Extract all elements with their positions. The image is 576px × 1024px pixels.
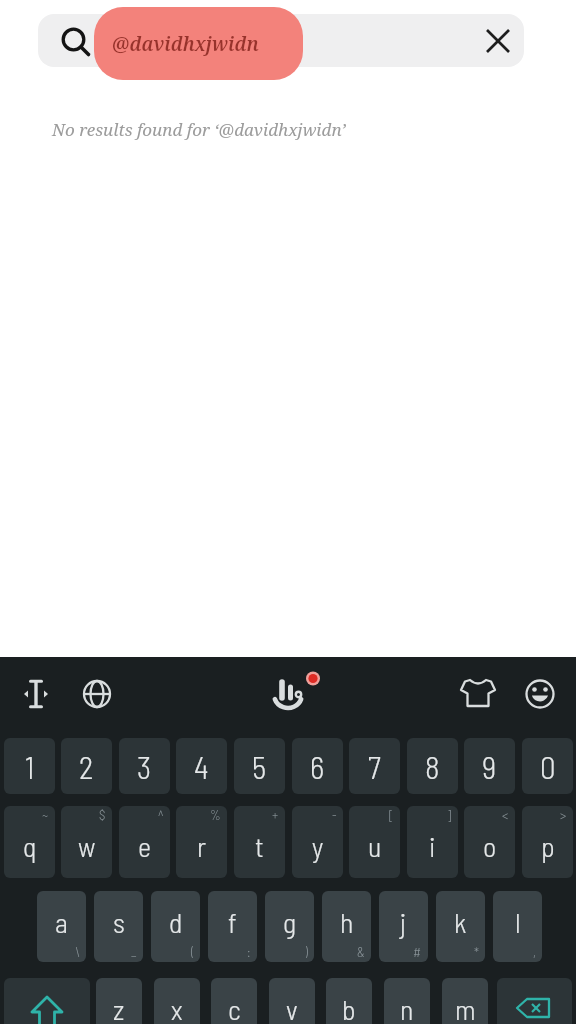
staticText: 6 [310, 748, 325, 785]
button[interactable]: s [94, 891, 143, 962]
staticText: c [228, 992, 241, 1024]
button[interactable]: ] [407, 806, 458, 878]
button[interactable] [12, 670, 60, 718]
button[interactable]: 6 [292, 738, 343, 794]
staticText: \ [75, 944, 80, 960]
button[interactable]: a [37, 891, 86, 962]
staticText: 0 [540, 748, 556, 785]
button[interactable]: l [493, 891, 542, 962]
staticText: b [342, 992, 356, 1024]
staticText: y [312, 829, 324, 863]
button[interactable]: 8 [407, 738, 458, 794]
button[interactable]: 3 [119, 738, 170, 794]
staticText: d [169, 905, 183, 939]
button[interactable]: ~ [4, 806, 55, 878]
button[interactable]: f [208, 891, 257, 962]
button[interactable]: % [176, 806, 227, 878]
button[interactable]: v [269, 978, 315, 1024]
staticText: & [357, 944, 365, 960]
button[interactable] [516, 670, 564, 718]
button[interactable]: 1 [4, 738, 55, 794]
button[interactable]: 7 [349, 738, 400, 794]
staticText: r [197, 829, 207, 863]
staticText: 2 [79, 748, 94, 785]
staticText: a [55, 905, 68, 939]
staticText: ~ [42, 807, 49, 823]
staticText: [ [389, 807, 394, 823]
staticText: > [560, 807, 567, 823]
staticText: i [429, 829, 436, 863]
staticText: u [368, 829, 382, 863]
button[interactable]: x [154, 978, 200, 1024]
button[interactable]: [ [349, 806, 400, 878]
button[interactable]: d [151, 891, 200, 962]
staticText: k [454, 905, 467, 939]
staticText: @davidhxjwidn [112, 31, 259, 57]
staticText: 9 [482, 748, 497, 785]
button[interactable]: 0 [522, 738, 573, 794]
button[interactable]: j [379, 891, 428, 962]
button[interactable] [479, 22, 517, 60]
button[interactable]: ^ [119, 806, 170, 878]
staticText: ) [305, 944, 308, 960]
button[interactable]: m [442, 978, 488, 1024]
staticText: 8 [425, 748, 440, 785]
staticText: j [400, 905, 407, 939]
staticText: f [228, 905, 237, 939]
button[interactable] [497, 978, 572, 1024]
staticText: % [210, 807, 221, 823]
staticText: l [515, 905, 521, 939]
staticText: x [171, 992, 183, 1024]
staticText: ] [447, 807, 452, 823]
staticText: ( [191, 944, 194, 960]
staticText: t [255, 829, 264, 863]
staticText: * [474, 944, 479, 960]
staticText: , [533, 944, 536, 960]
staticText: h [340, 905, 354, 939]
button[interactable]: h [322, 891, 371, 962]
button[interactable] [454, 670, 502, 718]
button[interactable]: $ [61, 806, 112, 878]
staticText: No results found for ‘@davidhxjwidn’ [52, 118, 346, 141]
button[interactable]: @davidhxjwidn [94, 7, 303, 80]
staticText: e [138, 829, 152, 863]
staticText: 5 [252, 748, 267, 785]
button[interactable] [38, 14, 524, 67]
button[interactable]: b [326, 978, 372, 1024]
staticText: : [247, 944, 251, 960]
button[interactable]: g [265, 891, 314, 962]
button[interactable]: 4 [176, 738, 227, 794]
staticText: z [113, 992, 125, 1024]
staticText: p [541, 829, 555, 863]
staticText: ^ [158, 807, 164, 823]
staticText: - [332, 807, 337, 823]
staticText: 3 [137, 748, 152, 785]
staticText: n [400, 992, 414, 1024]
staticText: $ [99, 807, 106, 823]
button[interactable]: k [436, 891, 485, 962]
button[interactable]: > [522, 806, 573, 878]
button[interactable] [264, 670, 324, 730]
staticText: # [413, 944, 422, 960]
button[interactable]: 5 [234, 738, 285, 794]
staticText: _ [131, 944, 137, 960]
button[interactable]: c [211, 978, 257, 1024]
staticText: < [502, 807, 509, 823]
button[interactable]: - [292, 806, 343, 878]
staticText: g [283, 905, 297, 939]
button[interactable] [56, 22, 94, 60]
button[interactable]: n [384, 978, 430, 1024]
button[interactable]: z [96, 978, 142, 1024]
staticText: q [23, 829, 37, 863]
staticText: v [286, 992, 298, 1024]
button[interactable]: < [464, 806, 515, 878]
staticText: + [272, 807, 279, 823]
staticText: 4 [194, 748, 209, 785]
staticText: s [113, 905, 125, 939]
button[interactable]: 2 [61, 738, 112, 794]
button[interactable]: 9 [464, 738, 515, 794]
staticText: m [455, 992, 476, 1024]
button[interactable] [4, 978, 90, 1024]
button[interactable] [73, 670, 121, 718]
button[interactable]: + [234, 806, 285, 878]
